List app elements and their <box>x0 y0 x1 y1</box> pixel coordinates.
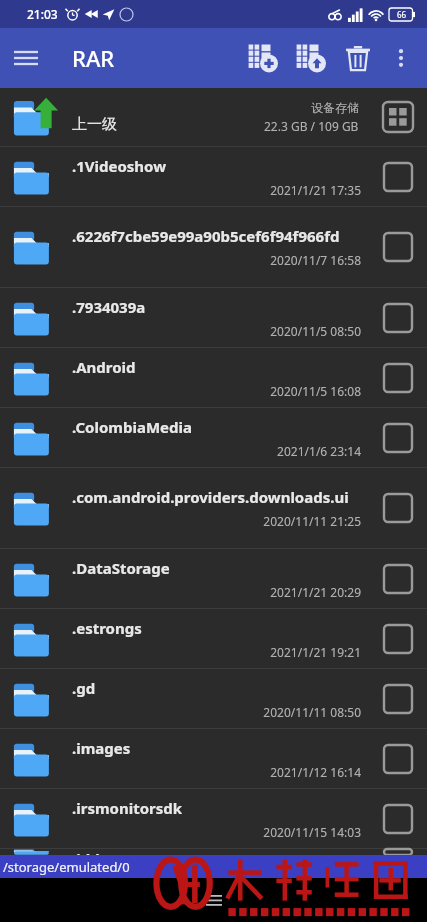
staticText: 66 <box>397 9 407 20</box>
staticText: .estrongs <box>72 618 142 638</box>
staticText: 2020/11/5 08:50 <box>72 323 361 339</box>
button[interactable]: Select .gd <box>369 669 427 728</box>
staticText: .Android <box>72 357 136 377</box>
button[interactable]: .estrongs <box>0 609 427 668</box>
staticText: .DataStorage <box>72 558 170 578</box>
button[interactable]: .7934039a <box>0 288 427 347</box>
staticText: .irsmonitorsdk <box>72 798 183 818</box>
button[interactable]: Extract archive <box>287 34 335 82</box>
staticText: 上一级 <box>72 115 117 134</box>
button[interactable]: Delete <box>335 35 381 81</box>
staticText: 2020/11/5 16:08 <box>72 383 361 399</box>
button[interactable]: .com.android.providers.downloads.ui <box>0 468 427 548</box>
staticText: .ColombiaMedia <box>72 417 192 437</box>
button[interactable]: Select .1Videoshow <box>369 147 427 206</box>
button[interactable]: Grid view <box>369 88 427 146</box>
button[interactable]: Select .images <box>369 729 427 788</box>
button[interactable]: .6226f7cbe59e99a90b5cef6f94f966fd <box>0 207 427 287</box>
staticText: 22.3 GB / 109 GB <box>264 118 359 134</box>
staticText: .6226f7cbe59e99a90b5cef6f94f966fd <box>72 226 340 246</box>
button[interactable]: .irsmonitorsdk <box>0 789 427 848</box>
button[interactable]: .Android <box>0 348 427 407</box>
button[interactable]: Select .DataStorage <box>369 549 427 608</box>
button[interactable]: Select .Android <box>369 348 427 407</box>
staticText: /storage/emulated/0 <box>3 858 130 876</box>
staticText: 2021/1/21 19:21 <box>72 644 361 660</box>
staticText: RAR <box>72 43 115 73</box>
button[interactable]: /storage/emulated/0 <box>0 855 427 878</box>
button[interactable]: .gd <box>0 669 427 728</box>
staticText: 2021/1/6 23:14 <box>72 443 361 459</box>
staticText: .1Videoshow <box>72 156 167 176</box>
staticText: 设备存储 <box>311 100 359 115</box>
button[interactable]: Recents <box>194 880 234 920</box>
button[interactable]: Select .irsmonitorsdk <box>369 789 427 848</box>
button[interactable]: Select .6226f7cbe59e99a90b5cef6f94f966fd <box>369 207 427 287</box>
staticText: .images <box>72 738 131 758</box>
button[interactable]: 上一级 <box>0 88 427 146</box>
button[interactable]: Select .estrongs <box>369 609 427 668</box>
staticText: 2020/11/7 16:58 <box>72 252 361 268</box>
button[interactable]: Menu <box>0 32 52 84</box>
button[interactable]: Add to archive <box>239 34 287 82</box>
staticText: 21:03 <box>27 6 58 22</box>
button[interactable]: Select .idd <box>369 849 427 855</box>
staticText: 2020/11/11 08:50 <box>72 704 361 720</box>
button[interactable]: Select .7934039a <box>369 288 427 347</box>
button[interactable]: Select .com.android.providers.downloads.… <box>369 468 427 548</box>
staticText: .idd <box>72 849 100 855</box>
button[interactable]: .ColombiaMedia <box>0 408 427 467</box>
staticText: .com.android.providers.downloads.ui <box>72 487 349 507</box>
staticText: 2020/11/15 14:03 <box>72 824 361 840</box>
staticText: 2020/11/11 21:25 <box>72 513 361 529</box>
staticText: .gd <box>72 678 96 698</box>
button[interactable]: .1Videoshow <box>0 147 427 206</box>
button[interactable]: .images <box>0 729 427 788</box>
staticText: .7934039a <box>72 297 146 317</box>
button[interactable]: .idd <box>0 849 427 855</box>
button[interactable]: Select .ColombiaMedia <box>369 408 427 467</box>
staticText: 2021/1/21 17:35 <box>72 182 361 198</box>
staticText: 2021/1/21 20:29 <box>72 584 361 600</box>
button[interactable]: More options <box>381 38 421 78</box>
staticText: 2021/1/12 16:14 <box>72 764 361 780</box>
button[interactable]: .DataStorage <box>0 549 427 608</box>
